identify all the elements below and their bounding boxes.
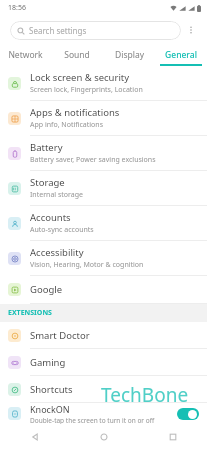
staticText: Vision, Hearing, Motor & cognition: [30, 260, 144, 270]
staticText: Accounts: [30, 211, 71, 224]
button[interactable]: Lock screen & security: [0, 66, 207, 101]
button[interactable]: More options: [181, 20, 201, 40]
button[interactable]: KnockON toggle: [177, 408, 199, 420]
button[interactable]: KnockON: [0, 403, 207, 424]
staticText: Display: [115, 49, 144, 61]
button[interactable]: Smart Doctor: [0, 322, 207, 349]
button[interactable]: Home: [69, 424, 138, 450]
staticText: Internal storage: [30, 190, 83, 200]
button[interactable]: Google: [0, 276, 207, 304]
staticText: Smart Doctor: [30, 329, 90, 342]
staticText: Battery: [30, 141, 63, 154]
button[interactable]: Recents: [138, 424, 207, 450]
staticText: Storage: [30, 176, 65, 189]
staticText: General: [165, 49, 197, 61]
button[interactable]: Display: [103, 44, 155, 66]
staticText: Shortcuts: [30, 383, 73, 396]
staticText: Sound: [64, 49, 90, 61]
staticText: KnockON: [30, 403, 70, 415]
staticText: Double-tap the screen to turn it on or o…: [30, 416, 155, 424]
staticText: App info, Notifications: [30, 120, 104, 130]
staticText: Lock screen & security: [30, 71, 130, 84]
button[interactable]: Apps & notifications: [0, 101, 207, 136]
button[interactable]: Gaming: [0, 349, 207, 376]
staticText: 18:56: [8, 3, 26, 13]
staticText: Accessibility: [30, 246, 84, 259]
staticText: Search settings: [29, 25, 87, 36]
staticText: Network: [8, 49, 43, 61]
staticText: Apps & notifications: [30, 106, 120, 119]
button[interactable]: Search settings: [10, 21, 181, 40]
staticText: Auto-sync accounts: [30, 225, 94, 235]
staticText: EXTENSIONS: [8, 308, 52, 318]
button[interactable]: General: [155, 44, 207, 66]
button[interactable]: Accounts: [0, 206, 207, 241]
button[interactable]: Sound: [51, 44, 103, 66]
button[interactable]: Back: [0, 424, 69, 450]
staticText: TechBone: [101, 382, 189, 408]
button[interactable]: Network: [0, 44, 51, 66]
staticText: Gaming: [30, 356, 66, 369]
button[interactable]: Battery: [0, 136, 207, 171]
button[interactable]: Accessibility: [0, 241, 207, 276]
button[interactable]: Storage: [0, 171, 207, 206]
staticText: Google: [30, 283, 63, 296]
staticText: Battery saver, Power saving exclusions: [30, 155, 156, 165]
staticText: Screen lock, Fingerprints, Location: [30, 85, 143, 95]
button[interactable]: Shortcuts: [0, 376, 207, 403]
